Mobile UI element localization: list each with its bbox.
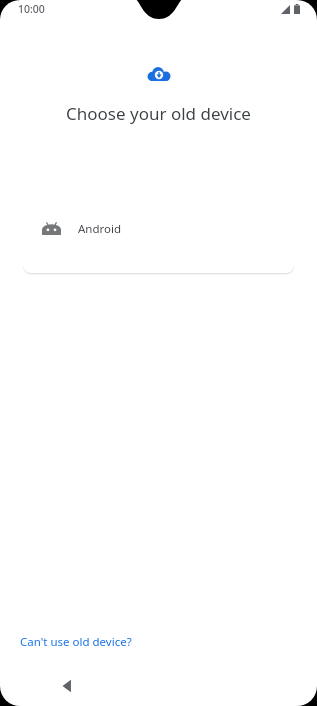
staticText: Can't use old device?: [20, 634, 132, 650]
staticText: 10:00: [18, 2, 45, 16]
button[interactable]: Android: [23, 184, 294, 273]
button[interactable]: Can't use old device?: [12, 631, 140, 653]
button[interactable]: Back: [48, 667, 86, 705]
staticText: Choose your old device: [24, 102, 293, 125]
staticText: Android: [78, 221, 122, 237]
